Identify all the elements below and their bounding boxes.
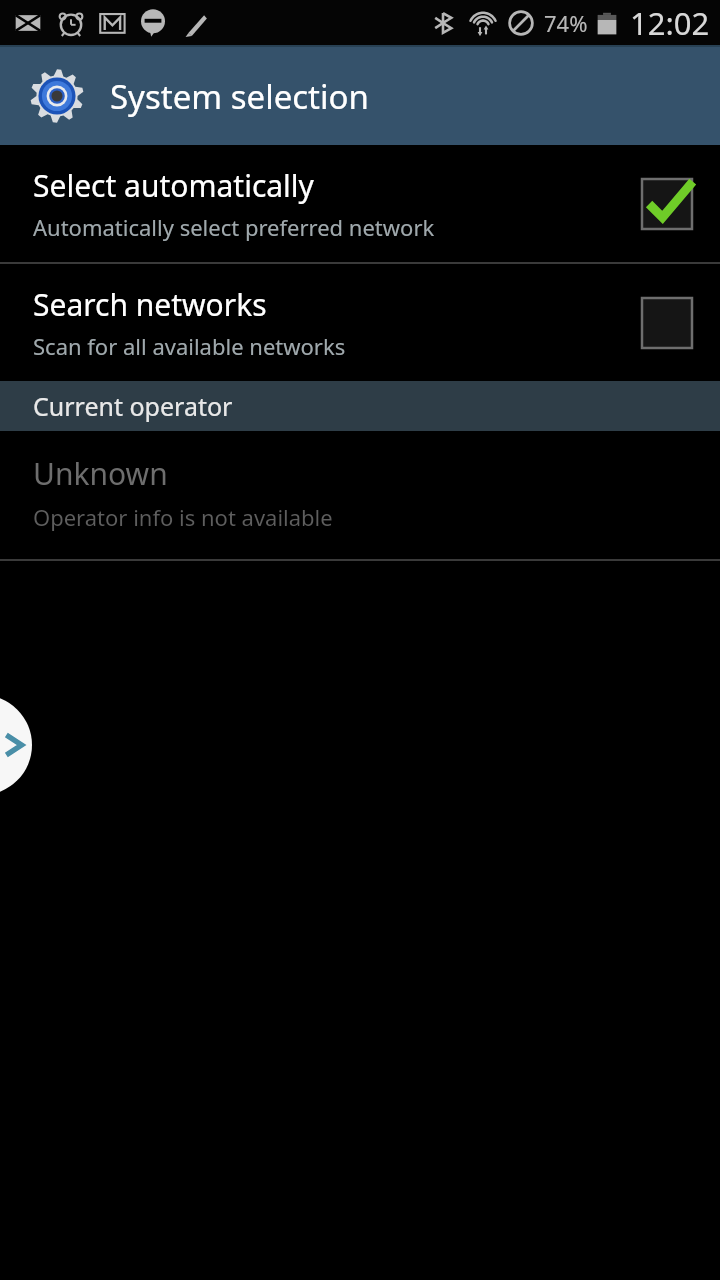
staticText: System selection — [110, 74, 369, 119]
staticText: 74% — [544, 8, 588, 38]
staticText: Unknown — [33, 453, 168, 494]
button[interactable]: Unchecked — [639, 295, 695, 351]
button[interactable]: Checked — [639, 176, 695, 232]
button[interactable]: Search networks — [0, 264, 720, 381]
button[interactable]: System selection — [0, 47, 720, 145]
button[interactable]: Open panel — [0, 695, 32, 795]
button[interactable]: Unknown — [0, 431, 720, 559]
staticText: Automatically select preferred network — [33, 212, 435, 242]
staticText: Current operator — [33, 389, 233, 423]
staticText: 12:02 — [630, 2, 710, 44]
staticText: Operator info is not available — [33, 502, 333, 532]
staticText: Scan for all available networks — [33, 331, 346, 361]
staticText: Select automatically — [33, 165, 314, 206]
staticText: Search networks — [33, 284, 267, 325]
button[interactable]: Select automatically — [0, 145, 720, 262]
